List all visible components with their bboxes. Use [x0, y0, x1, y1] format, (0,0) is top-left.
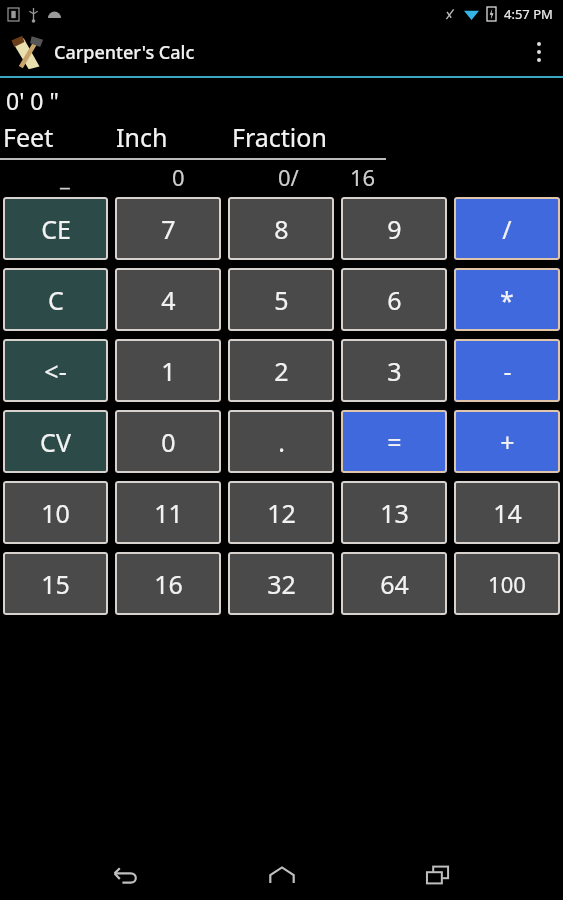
staticText: 5 — [274, 283, 289, 317]
staticText: 11 — [154, 496, 183, 530]
staticText: 32 — [267, 567, 296, 601]
staticText: 0 — [161, 425, 176, 459]
button[interactable]: 16 — [115, 552, 221, 615]
staticText: 2 — [274, 354, 289, 388]
staticText: 15 — [41, 567, 70, 601]
button[interactable]: 15 — [3, 552, 108, 615]
button[interactable]: Back — [93, 853, 157, 897]
button[interactable]: 1 — [115, 339, 221, 402]
staticText: 3 — [387, 354, 402, 388]
staticText: = — [387, 425, 402, 459]
button[interactable]: 10 — [3, 481, 108, 544]
staticText: 100 — [488, 569, 526, 599]
button[interactable]: - — [454, 339, 560, 402]
button[interactable]: + — [454, 410, 560, 473]
staticText: CE — [41, 212, 71, 246]
button[interactable]: 4 — [115, 268, 221, 331]
staticText: 64 — [380, 567, 409, 601]
button[interactable]: 100 — [454, 552, 560, 615]
staticText: <- — [44, 354, 67, 388]
button[interactable]: 6 — [341, 268, 447, 331]
button[interactable]: 13 — [341, 481, 447, 544]
button[interactable]: C — [3, 268, 108, 331]
staticText: 4:57 PM — [504, 5, 553, 23]
staticText: 12 — [267, 496, 296, 530]
staticText: Carpenter's Calc — [54, 40, 195, 65]
staticText: 4 — [161, 283, 176, 317]
staticText: CV — [40, 425, 71, 459]
staticText: 1 — [161, 354, 176, 388]
staticText: . — [278, 425, 285, 459]
staticText: 14 — [493, 496, 522, 530]
button[interactable]: 2 — [228, 339, 334, 402]
button[interactable]: More options — [515, 28, 563, 76]
staticText: 16 — [350, 162, 376, 192]
button[interactable]: . — [228, 410, 334, 473]
button[interactable]: CV — [3, 410, 108, 473]
staticText: + — [500, 425, 515, 459]
button[interactable]: 3 — [341, 339, 447, 402]
staticText: 10 — [41, 496, 70, 530]
button[interactable]: 12 — [228, 481, 334, 544]
button[interactable]: * — [454, 268, 560, 331]
button[interactable]: CE — [3, 197, 108, 260]
staticText: 9 — [387, 212, 402, 246]
staticText: - — [503, 354, 512, 388]
staticText: Inch — [116, 120, 168, 154]
button[interactable]: 14 — [454, 481, 560, 544]
button[interactable]: = — [341, 410, 447, 473]
button[interactable]: Recent apps — [406, 853, 470, 897]
staticText: 16 — [154, 567, 183, 601]
staticText: C — [48, 283, 64, 317]
button[interactable]: / — [454, 197, 560, 260]
staticText: Feet — [3, 120, 54, 154]
staticText: * — [500, 283, 514, 317]
staticText: / — [502, 212, 512, 246]
button[interactable]: 11 — [115, 481, 221, 544]
button[interactable]: 0 — [115, 410, 221, 473]
button[interactable]: 5 — [228, 268, 334, 331]
staticText: 0' 0 " — [6, 85, 59, 116]
staticText: 0/ — [278, 162, 299, 192]
staticText: 13 — [380, 496, 409, 530]
staticText: Fraction — [232, 120, 327, 154]
button[interactable]: 8 — [228, 197, 334, 260]
staticText: 7 — [161, 212, 176, 246]
staticText: 0 — [172, 162, 185, 192]
button[interactable]: 64 — [341, 552, 447, 615]
button[interactable]: 9 — [341, 197, 447, 260]
button[interactable]: Home — [250, 853, 314, 897]
staticText: 6 — [387, 283, 402, 317]
staticText: 8 — [274, 212, 289, 246]
button[interactable]: 32 — [228, 552, 334, 615]
button[interactable]: 7 — [115, 197, 221, 260]
button[interactable]: <- — [3, 339, 108, 402]
staticText: _ — [60, 162, 70, 192]
